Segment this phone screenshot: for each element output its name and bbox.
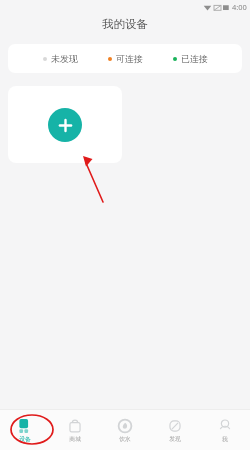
button[interactable]: 发现 [150, 410, 200, 450]
staticText: 设备 [19, 435, 31, 442]
staticText: 商城 [69, 435, 81, 442]
staticText: 发现 [169, 435, 181, 442]
staticText: 4:00 [232, 2, 247, 12]
staticText: 未发现 [51, 53, 78, 64]
button[interactable]: 未发现 [41, 50, 80, 67]
button[interactable]: 饮水 [100, 410, 150, 450]
button[interactable]: 我 [200, 410, 250, 450]
button[interactable]: 可连接 [106, 50, 145, 67]
staticText: 我的设备 [102, 17, 148, 31]
staticText: 饮水 [119, 435, 131, 442]
staticText: 可连接 [116, 53, 143, 64]
button[interactable]: 商城 [50, 410, 100, 450]
button[interactable]: 已连接 [171, 50, 210, 67]
button[interactable]: 添加设备 [8, 86, 122, 163]
button[interactable]: 设备 [0, 410, 50, 450]
staticText: 我 [222, 435, 228, 442]
staticText: 已连接 [181, 53, 208, 64]
